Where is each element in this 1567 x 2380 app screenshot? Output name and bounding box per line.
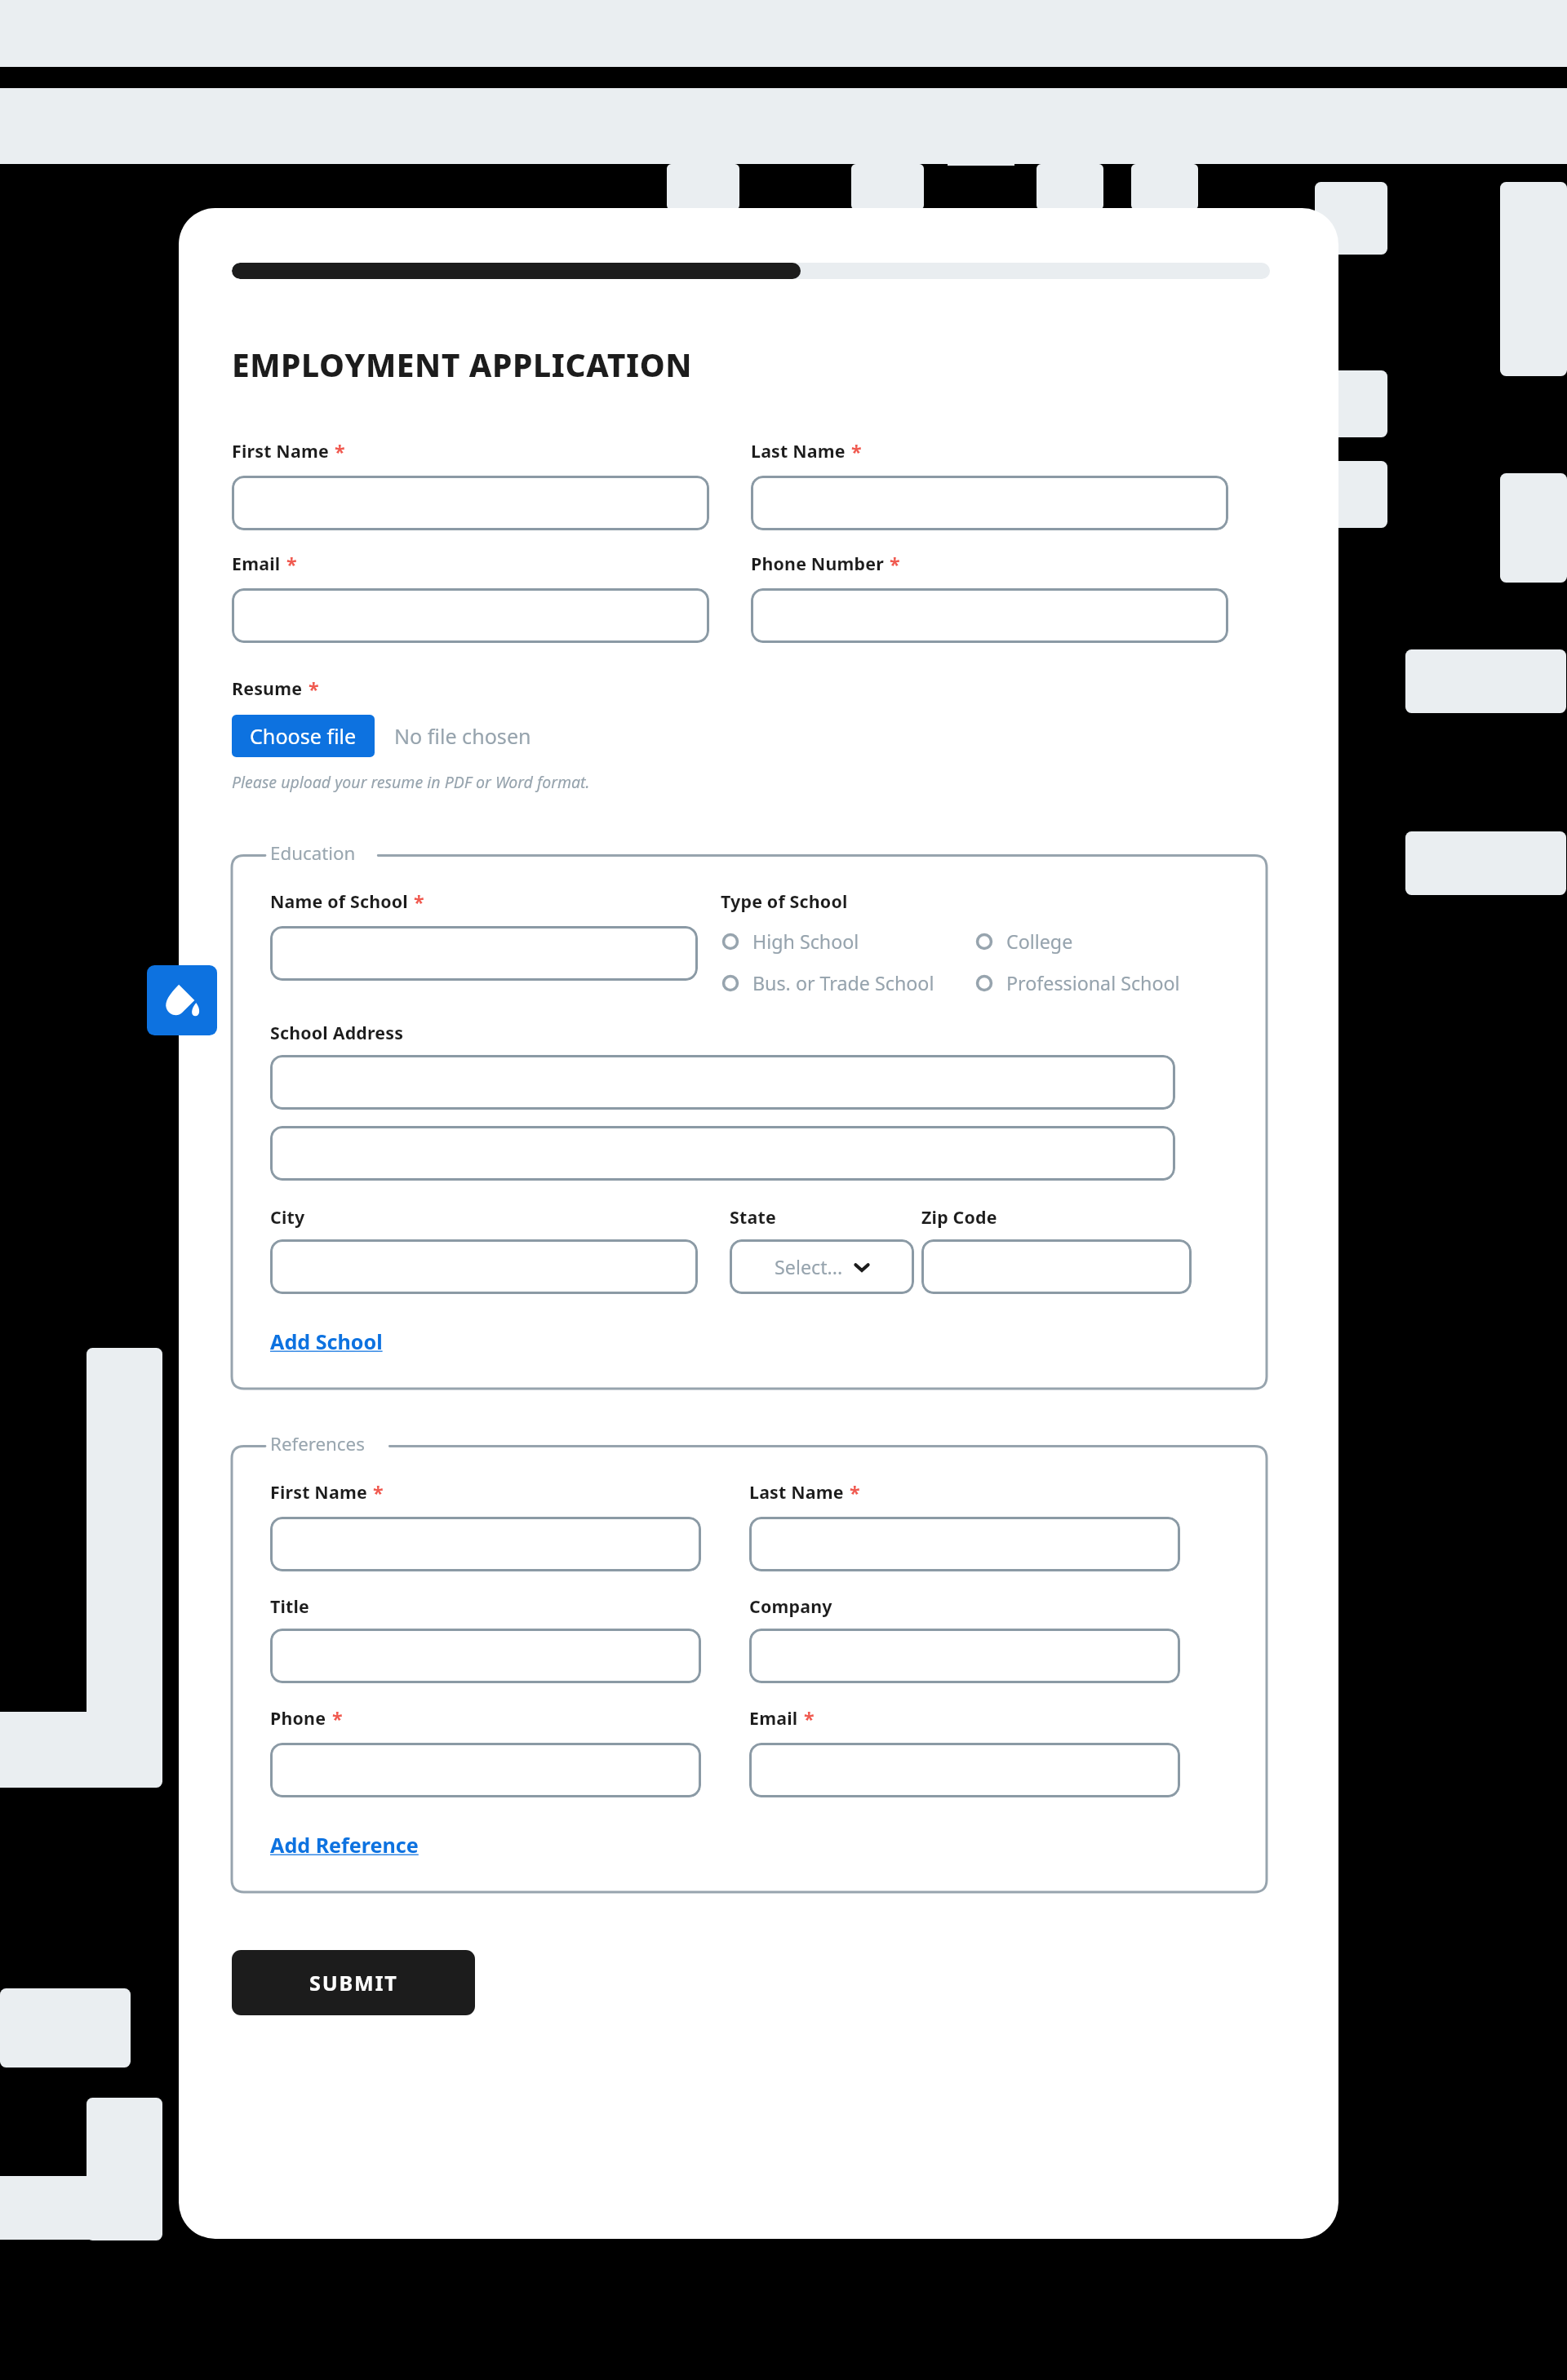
staticText: Last Name: [751, 439, 846, 463]
staticText: SUBMIT: [309, 1969, 398, 1997]
button[interactable]: [270, 1239, 698, 1294]
button[interactable]: Add School: [270, 1327, 383, 1355]
staticText: *: [804, 1706, 815, 1732]
button[interactable]: Professional School: [974, 970, 1228, 996]
button[interactable]: [270, 1055, 1175, 1110]
staticText: Email: [749, 1706, 798, 1730]
staticText: *: [890, 552, 900, 578]
staticText: College: [1006, 929, 1073, 955]
button[interactable]: SUBMIT: [232, 1950, 475, 2015]
staticText: References: [270, 1431, 365, 1456]
button[interactable]: [749, 1743, 1180, 1797]
staticText: *: [309, 676, 319, 702]
button[interactable]: [270, 1743, 701, 1797]
staticText: Resume: [232, 676, 303, 700]
button[interactable]: [749, 1517, 1180, 1571]
button[interactable]: [270, 1629, 701, 1683]
button[interactable]: [270, 1126, 1175, 1181]
staticText: Email: [232, 552, 281, 575]
button[interactable]: [232, 588, 709, 643]
staticText: City: [270, 1205, 305, 1229]
staticText: Title: [270, 1594, 310, 1618]
staticText: Bus. or Trade School: [752, 970, 934, 996]
staticText: Name of School: [270, 889, 408, 913]
button[interactable]: [270, 1517, 701, 1571]
button[interactable]: Theme colour: [147, 965, 217, 1035]
staticText: Phone: [270, 1706, 326, 1730]
staticText: Add School: [270, 1327, 383, 1355]
staticText: State: [730, 1205, 776, 1229]
staticText: Company: [749, 1594, 832, 1618]
staticText: High School: [752, 929, 859, 955]
button[interactable]: Bus. or Trade School: [721, 970, 974, 996]
staticText: First Name: [232, 439, 329, 463]
button[interactable]: College: [974, 929, 1228, 955]
staticText: Last Name: [749, 1480, 844, 1504]
staticText: No file chosen: [394, 722, 531, 750]
staticText: Phone Number: [751, 552, 884, 575]
staticText: *: [414, 889, 424, 915]
button[interactable]: [751, 588, 1228, 643]
staticText: Choose file: [250, 722, 357, 750]
button[interactable]: Add Reference: [270, 1831, 419, 1859]
staticText: *: [335, 439, 345, 465]
staticText: Zip Code: [921, 1205, 997, 1229]
button[interactable]: Select...: [730, 1239, 914, 1294]
staticText: *: [851, 439, 862, 465]
button[interactable]: [921, 1239, 1192, 1294]
staticText: EMPLOYMENT APPLICATION: [232, 343, 692, 386]
staticText: Type of School: [721, 889, 848, 913]
button[interactable]: High School: [721, 929, 974, 955]
staticText: *: [373, 1480, 384, 1506]
button[interactable]: [270, 926, 698, 981]
button[interactable]: Choose file: [232, 715, 375, 757]
staticText: *: [286, 552, 297, 578]
staticText: *: [332, 1706, 343, 1732]
button[interactable]: [232, 476, 709, 530]
staticText: Please upload your resume in PDF or Word…: [232, 771, 590, 793]
button[interactable]: [751, 476, 1228, 530]
staticText: Professional School: [1006, 970, 1180, 996]
staticText: Add Reference: [270, 1831, 419, 1859]
staticText: Select...: [775, 1254, 843, 1280]
staticText: Education: [270, 840, 356, 865]
button[interactable]: [749, 1629, 1180, 1683]
staticText: School Address: [270, 1021, 404, 1044]
staticText: *: [850, 1480, 860, 1506]
staticText: First Name: [270, 1480, 367, 1504]
